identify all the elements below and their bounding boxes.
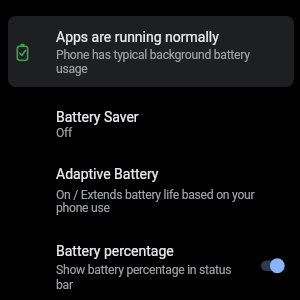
staticText: On / Extends battery life based on your … xyxy=(56,188,255,215)
button[interactable]: Battery percentage xyxy=(0,234,300,298)
button[interactable]: Battery Saver xyxy=(0,100,300,146)
staticText: Apps are running normally xyxy=(56,29,219,45)
button[interactable]: Adaptive Battery xyxy=(0,157,300,219)
staticText: Battery percentage xyxy=(56,243,174,259)
button[interactable] xyxy=(254,253,292,279)
staticText: Show battery percentage in status bar xyxy=(56,263,232,292)
staticText: Adaptive Battery xyxy=(56,166,159,182)
button[interactable]: Apps are running normally xyxy=(8,16,294,87)
staticText: Battery Saver xyxy=(56,109,139,125)
staticText: Off xyxy=(56,126,73,140)
staticText: Phone has typical background battery usa… xyxy=(56,48,250,76)
